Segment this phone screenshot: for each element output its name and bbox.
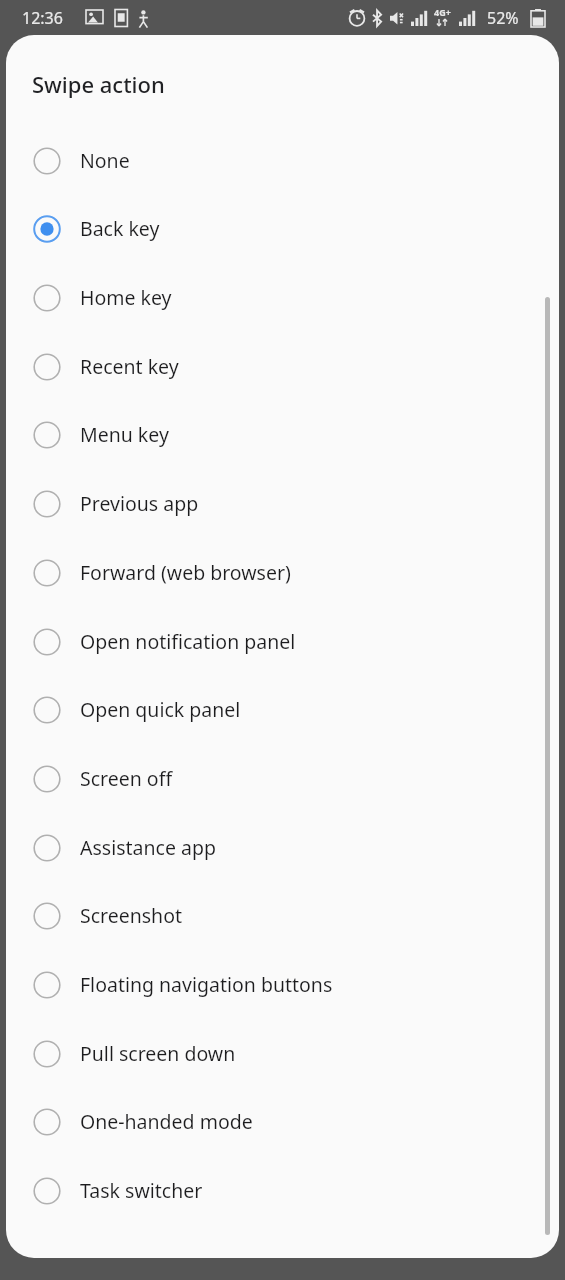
button[interactable]: Menu key <box>6 400 559 469</box>
button[interactable]: Open quick panel <box>6 675 559 744</box>
button[interactable]: None <box>6 126 559 195</box>
staticText: Forward (web browser) <box>80 559 291 586</box>
staticText: 12:36 <box>22 7 63 29</box>
staticText: 52% <box>487 7 519 29</box>
button[interactable]: Task switcher <box>6 1156 559 1225</box>
button[interactable]: Floating navigation buttons <box>6 950 559 1019</box>
staticText: Menu key <box>80 421 169 448</box>
staticText: Open notification panel <box>80 628 296 655</box>
button[interactable]: Pull screen down <box>6 1019 559 1088</box>
staticText: Open quick panel <box>80 696 241 723</box>
staticText: Floating navigation buttons <box>80 971 333 998</box>
staticText: Recent key <box>80 353 179 380</box>
staticText: Task switcher <box>80 1177 203 1204</box>
button[interactable]: Assistance app <box>6 813 559 882</box>
staticText: Pull screen down <box>80 1040 236 1067</box>
staticText: None <box>80 147 130 174</box>
staticText: Back key <box>80 215 160 242</box>
button[interactable]: Recent key <box>6 332 559 401</box>
staticText: Home key <box>80 284 172 311</box>
staticText: Screenshot <box>80 902 183 929</box>
button[interactable]: Forward (web browser) <box>6 538 559 607</box>
button[interactable]: Back key <box>6 194 559 263</box>
staticText: Swipe action <box>32 69 165 99</box>
button[interactable]: Open notification panel <box>6 607 559 676</box>
button[interactable]: Screen off <box>6 744 559 813</box>
button[interactable]: One-handed mode <box>6 1087 559 1156</box>
staticText: Previous app <box>80 490 199 517</box>
button[interactable]: Home key <box>6 263 559 332</box>
staticText: Assistance app <box>80 834 216 861</box>
staticText: 4G+ <box>434 6 451 18</box>
staticText: Screen off <box>80 765 173 792</box>
button[interactable]: Previous app <box>6 469 559 538</box>
button[interactable]: Screenshot <box>6 881 559 950</box>
staticText: One-handed mode <box>80 1108 253 1135</box>
